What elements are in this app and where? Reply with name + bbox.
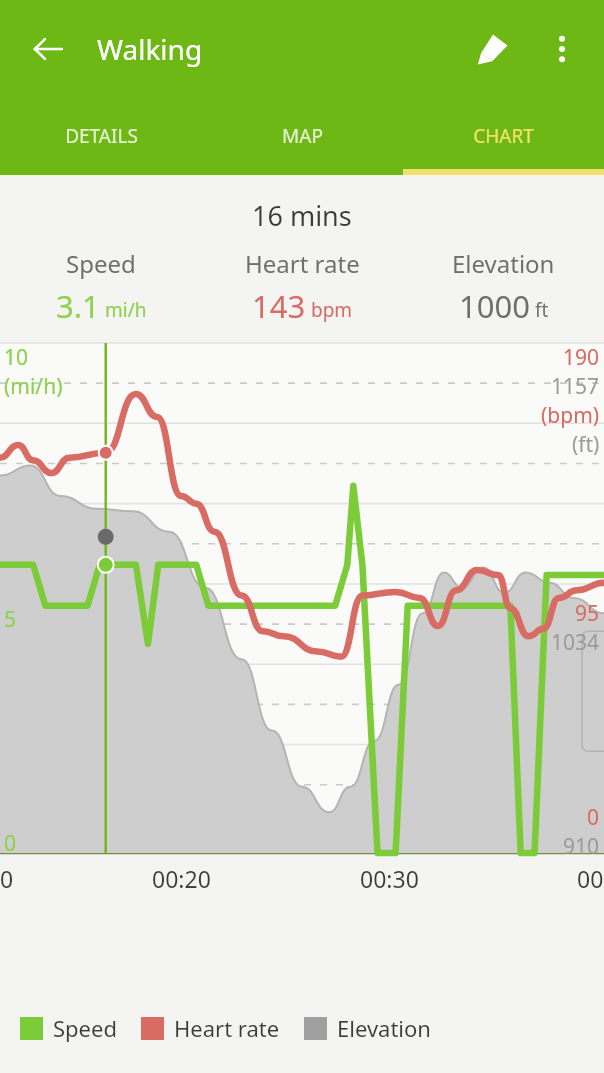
staticText: 0: [0, 863, 14, 894]
staticText: 910: [563, 832, 600, 861]
button[interactable]: More options: [534, 21, 590, 77]
staticText: 190: [563, 343, 600, 372]
button[interactable]: Edit: [464, 20, 522, 78]
staticText: (bpm): [541, 401, 600, 430]
staticText: ft: [535, 297, 549, 323]
staticText: 0: [587, 803, 600, 832]
staticText: 3.1: [56, 285, 100, 327]
staticText: Heart rate: [174, 1013, 280, 1043]
staticText: CHART: [473, 123, 534, 149]
button[interactable]: Heart rate: [202, 247, 403, 327]
button[interactable]: Elevation: [403, 247, 604, 327]
button[interactable]: CHART: [403, 97, 604, 175]
staticText: 1034: [551, 628, 600, 657]
staticText: 95: [575, 599, 600, 628]
staticText: (mi/h): [4, 372, 63, 401]
staticText: Walking: [97, 30, 203, 68]
button[interactable]: Speed: [0, 247, 202, 327]
button[interactable]: DETAILS: [0, 97, 202, 175]
staticText: 10: [4, 343, 29, 372]
staticText: MAP: [282, 123, 323, 149]
staticText: 1000: [459, 285, 530, 327]
staticText: 1157: [551, 372, 600, 401]
staticText: 143: [252, 285, 306, 327]
staticText: 16 mins: [252, 197, 352, 234]
staticText: bpm: [311, 297, 353, 323]
staticText: Elevation: [337, 1013, 431, 1043]
staticText: mi/h: [105, 297, 147, 323]
button[interactable]: Heart rate: [141, 1013, 280, 1043]
staticText: Speed: [66, 247, 136, 280]
button[interactable]: MAP: [202, 97, 403, 175]
staticText: 00: [577, 863, 604, 894]
staticText: Elevation: [452, 247, 555, 280]
staticText: 00:30: [360, 863, 419, 894]
button[interactable]: Speed: [20, 1013, 117, 1043]
staticText: Speed: [53, 1013, 117, 1043]
button[interactable]: Back: [20, 21, 76, 77]
staticText: 5: [4, 605, 17, 634]
staticText: 00:20: [152, 863, 211, 894]
staticText: DETAILS: [65, 123, 138, 149]
staticText: Heart rate: [245, 247, 360, 280]
button[interactable]: Elevation: [304, 1013, 431, 1043]
staticText: 0: [4, 829, 17, 858]
staticText: (ft): [572, 430, 600, 459]
